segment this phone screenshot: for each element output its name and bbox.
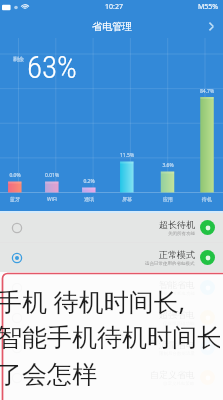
staticText: 通话 [76, 196, 102, 202]
staticText: 11.5% [114, 152, 140, 159]
staticText: 超强省电 [159, 309, 195, 320]
staticText: 0.0% [2, 172, 28, 179]
staticText: 了会怎样 [0, 359, 97, 390]
staticText: 超长待机 [159, 219, 195, 230]
staticText: 应用 [155, 196, 181, 202]
staticText: 智能省电 [159, 279, 195, 290]
staticText: WiFi [39, 196, 65, 203]
staticText: 关闭所有功能 [168, 231, 195, 237]
staticText: 正常模式 [159, 249, 195, 260]
staticText: 0.2% [76, 178, 102, 185]
button[interactable]: 超强省电 [0, 303, 223, 332]
staticText: 10:27 [105, 2, 123, 12]
staticText: 63% [27, 49, 77, 85]
staticText: 3.6% [155, 162, 181, 169]
staticText: 84.7% [194, 88, 220, 95]
staticText: 手机 待机时间长, [0, 284, 186, 318]
staticText: 省电管理 [92, 20, 132, 33]
staticText: 智能调节耗电功能 [159, 291, 195, 297]
button[interactable]: 正常模式 [0, 243, 223, 272]
button[interactable]: 自定义省电 [0, 363, 223, 392]
staticText: 适合日常使用的省电模式 [145, 261, 195, 267]
staticText: 待机 [194, 196, 220, 202]
staticText: 蓝牙 [2, 196, 28, 202]
button[interactable]: 智能省电 [0, 273, 223, 302]
staticText: 仅保留基础功能 [163, 321, 195, 327]
button[interactable]: 超长待机 [0, 213, 223, 242]
staticText: 智能手机待机时间长 [0, 322, 220, 353]
staticText: 剩余 [13, 56, 24, 63]
button[interactable]: 流量省电 [0, 333, 223, 362]
staticText: 屏幕 [114, 196, 140, 202]
staticText: 0.01% [39, 172, 65, 179]
staticText: M55% [198, 2, 219, 12]
button[interactable]: More [199, 14, 223, 38]
staticText: 自定义省电 [150, 369, 195, 380]
staticText: 流量省电 [159, 339, 195, 350]
